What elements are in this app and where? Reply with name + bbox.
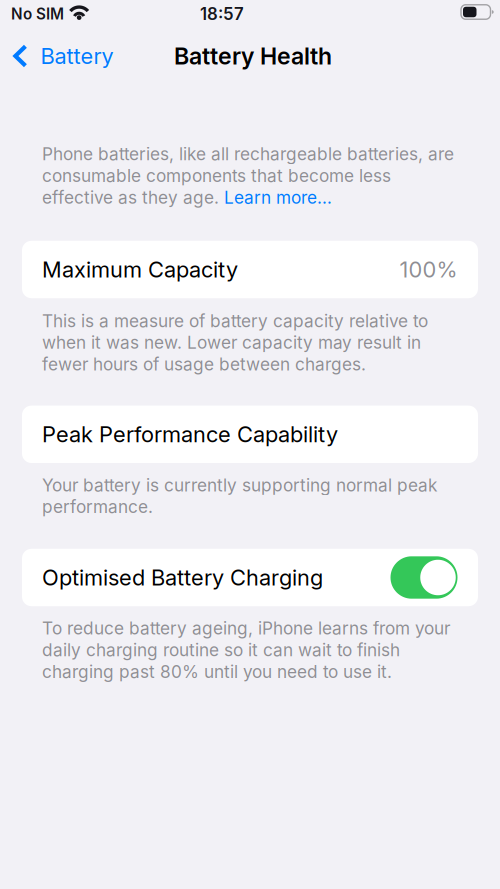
staticText: To reduce battery ageing, iPhone learns … (42, 618, 450, 682)
staticText: Peak Performance Capability (42, 421, 338, 448)
staticText: Optimised Battery Charging (42, 564, 323, 591)
button[interactable]: Peak Performance Capability (22, 406, 478, 463)
staticText: 100% (399, 256, 457, 283)
staticText: This is a measure of battery capacity re… (42, 310, 428, 375)
button[interactable]: Learn more (224, 187, 332, 209)
button[interactable]: Maximum Capacity (22, 241, 478, 298)
button[interactable]: Optimised Battery Charging (22, 549, 478, 606)
staticText: No SIM (11, 5, 64, 23)
staticText: 18:57 (200, 4, 244, 24)
button[interactable]: Optimised Battery Charging, on (390, 556, 457, 599)
staticText: Phone batteries, like all rechargeable b… (42, 144, 454, 208)
staticText: Battery (40, 43, 113, 69)
staticText: Maximum Capacity (42, 256, 238, 283)
staticText: Battery Health (174, 42, 332, 70)
button[interactable]: Battery (0, 34, 150, 78)
staticText: Your battery is currently supporting nor… (42, 475, 437, 517)
